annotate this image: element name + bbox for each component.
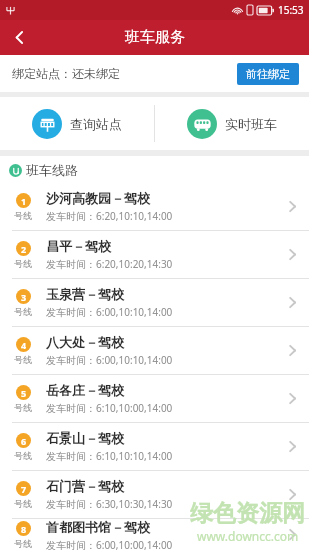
staticText: 发车时间：6:20,10:10,14:00 [46,209,173,223]
staticText: www.downcc.com [197,528,299,544]
staticText: 4 [21,339,27,351]
staticText: 8 [21,523,27,535]
button[interactable]: 2 [0,231,309,278]
staticText: 发车时间：6:30,10:30,14:30 [46,497,173,511]
staticText: 5 [21,387,27,399]
staticText: 号线 [14,258,32,269]
button[interactable]: 8 [0,519,309,550]
staticText: 前往绑定 [246,67,290,81]
button[interactable]: 3 [0,279,309,326]
button[interactable]: 4 [0,327,309,374]
staticText: 发车时间：6:00,10:00,14:00 [46,538,173,550]
button[interactable]: 实时班车 [155,97,309,150]
button[interactable]: 前往绑定 [237,63,299,85]
button[interactable]: 1 [0,183,309,230]
staticText: 实时班车 [225,116,277,132]
staticText: 发车时间：6:00,10:10,14:00 [46,353,173,367]
staticText: 昌平－驾校 [46,238,111,254]
staticText: 2 [21,243,27,255]
staticText: 3 [21,291,27,303]
staticText: 号线 [14,538,32,549]
staticText: 查询站点 [70,116,122,132]
staticText: 号线 [14,306,32,317]
staticText: 班车线路 [26,162,78,178]
staticText: 1 [21,195,27,207]
staticText: 班车服务 [125,28,185,47]
button[interactable]: Back [0,20,38,55]
staticText: 八大处－驾校 [46,334,124,350]
staticText: 号线 [14,354,32,365]
staticText: 7 [21,483,27,495]
staticText: 发车时间：6:10,10:10,14:00 [46,449,173,463]
staticText: 岳各庄－驾校 [46,382,124,398]
staticText: 玉泉营－驾校 [46,286,124,302]
staticText: 6 [21,435,27,447]
staticText: 石景山－驾校 [46,430,124,446]
button[interactable]: 5 [0,375,309,422]
staticText: 绑定站点：还未绑定 [12,66,120,81]
staticText: 发车时间：6:20,10:20,14:30 [46,257,173,271]
staticText: 首都图书馆－驾校 [46,519,150,535]
button[interactable]: 7 [0,471,309,518]
staticText: 石门营－驾校 [46,478,124,494]
staticText: 号线 [14,450,32,461]
staticText: 号线 [14,402,32,413]
staticText: 沙河高教园－驾校 [46,190,150,206]
staticText: 发车时间：6:00,10:10,14:00 [46,305,173,319]
staticText: 号线 [14,498,32,509]
button[interactable]: 6 [0,423,309,470]
staticText: 绿色资源网 [190,499,305,528]
staticText: 发车时间：6:10,10:00,14:00 [46,401,173,415]
staticText: 号线 [14,210,32,221]
button[interactable]: 查询站点 [0,97,154,150]
staticText: 15:53 [278,3,304,17]
